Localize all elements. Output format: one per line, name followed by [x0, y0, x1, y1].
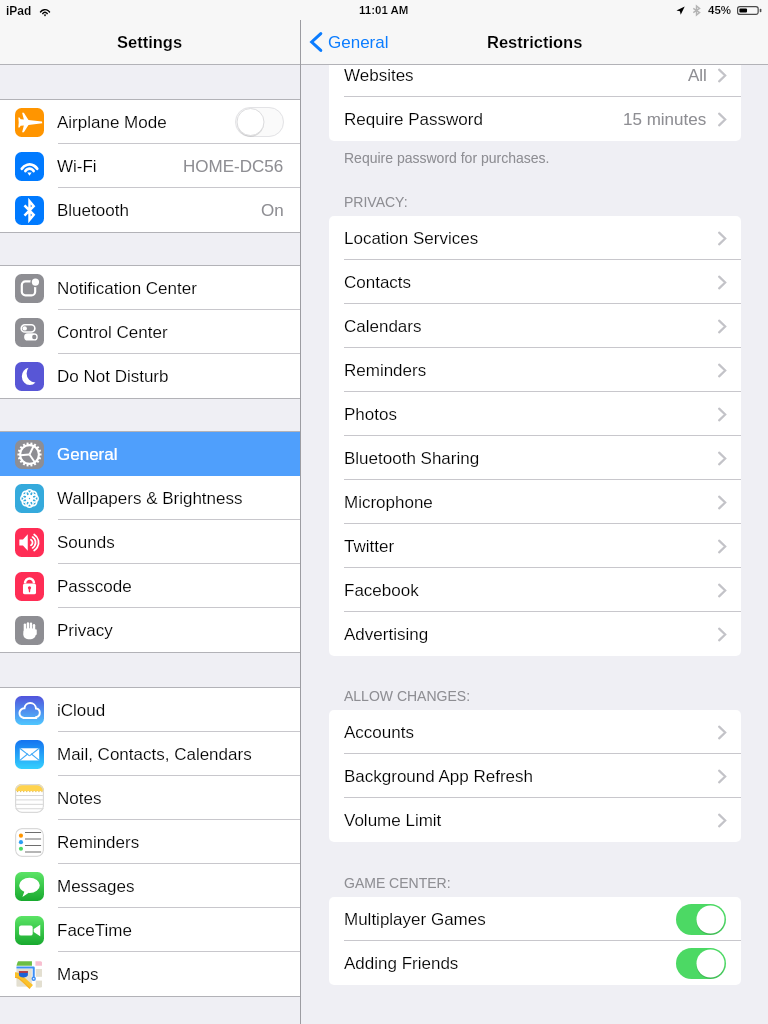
staticText: Wallpapers & Brightness [57, 489, 243, 508]
staticText: Bluetooth Sharing [344, 449, 480, 468]
button[interactable]: Photos [329, 392, 741, 436]
staticText: ALLOW CHANGES: [344, 688, 471, 704]
button[interactable]: Background App Refresh [329, 754, 741, 798]
button[interactable]: Airplane Mode [0, 100, 300, 144]
staticText: Advertising [344, 625, 429, 644]
button[interactable]: Facebook [329, 568, 741, 612]
button[interactable]: Accounts [329, 710, 741, 754]
staticText: PRIVACY: [344, 194, 408, 210]
staticText: General [57, 445, 118, 464]
staticText: Require password for purchases. [344, 150, 550, 166]
staticText: Settings [117, 33, 183, 51]
button[interactable]: Bluetooth [0, 188, 300, 232]
staticText: HOME-DC56 [183, 157, 284, 176]
button[interactable]: Volume Limit [329, 798, 741, 842]
button[interactable]: Reminders [0, 820, 300, 864]
staticText: Volume Limit [344, 811, 442, 830]
staticText: 11:01 AM [359, 4, 409, 17]
staticText: 45% [708, 4, 732, 17]
staticText: Notes [57, 789, 102, 808]
staticText: Websites [344, 66, 414, 85]
button[interactable]: Messages [0, 864, 300, 908]
staticText: iPad [6, 4, 32, 17]
button[interactable]: Twitter [329, 524, 741, 568]
button[interactable]: Wallpapers & Brightness [0, 476, 300, 520]
staticText: Airplane Mode [57, 113, 167, 132]
button[interactable]: Passcode [0, 564, 300, 608]
button[interactable]: Reminders [329, 348, 741, 392]
staticText: On [261, 201, 284, 220]
button[interactable]: Advertising [329, 612, 741, 656]
staticText: Facebook [344, 581, 419, 600]
button[interactable]: Mail, Contacts, Calendars [0, 732, 300, 776]
button[interactable]: General [0, 432, 300, 476]
staticText: Calendars [344, 317, 422, 336]
button[interactable]: Adding Friends [329, 941, 741, 985]
button[interactable]: Adding Friends on [676, 948, 726, 979]
staticText: Photos [344, 405, 397, 424]
button[interactable]: Airplane Mode off [235, 107, 284, 137]
staticText: Maps [57, 965, 99, 984]
staticText: Privacy [57, 621, 113, 640]
button[interactable]: Notification Center [0, 266, 300, 310]
staticText: Bluetooth [57, 201, 129, 220]
button[interactable]: Multiplayer Games on [676, 904, 726, 935]
staticText: Multiplayer Games [344, 910, 486, 929]
button[interactable]: Notes [0, 776, 300, 820]
staticText: Notification Center [57, 279, 197, 298]
staticText: Reminders [57, 833, 140, 852]
staticText: Do Not Disturb [57, 367, 169, 386]
staticText: GAME CENTER: [344, 875, 451, 891]
staticText: Sounds [57, 533, 115, 552]
staticText: iCloud [57, 701, 106, 720]
button[interactable]: Microphone [329, 480, 741, 524]
staticText: 15 minutes [623, 110, 707, 129]
button[interactable]: Contacts [329, 260, 741, 304]
staticText: Restrictions [487, 33, 583, 51]
staticText: Accounts [344, 723, 414, 742]
staticText: Background App Refresh [344, 767, 534, 786]
staticText: Wi-Fi [57, 157, 97, 176]
button[interactable]: Calendars [329, 304, 741, 348]
button[interactable]: Multiplayer Games [329, 897, 741, 941]
button[interactable]: Wi-Fi [0, 144, 300, 188]
button[interactable]: Require Password [329, 97, 741, 141]
staticText: FaceTime [57, 921, 132, 940]
button[interactable]: iCloud [0, 688, 300, 732]
staticText: Microphone [344, 493, 433, 512]
staticText: Twitter [344, 537, 395, 556]
staticText: All [688, 66, 707, 85]
staticText: Passcode [57, 577, 132, 596]
staticText: Mail, Contacts, Calendars [57, 745, 252, 764]
button[interactable]: Websites [329, 65, 741, 97]
button[interactable]: Maps [0, 952, 300, 996]
staticText: Contacts [344, 273, 412, 292]
button[interactable]: Sounds [0, 520, 300, 564]
button[interactable]: Do Not Disturb [0, 354, 300, 398]
staticText: Control Center [57, 323, 168, 342]
button[interactable]: Location Services [329, 216, 741, 260]
staticText: Adding Friends [344, 954, 459, 973]
button[interactable]: Bluetooth Sharing [329, 436, 741, 480]
staticText: Location Services [344, 229, 479, 248]
button[interactable]: FaceTime [0, 908, 300, 952]
staticText: Messages [57, 877, 135, 896]
button[interactable]: Control Center [0, 310, 300, 354]
staticText: Reminders [344, 361, 427, 380]
button[interactable]: Privacy [0, 608, 300, 652]
staticText: General [328, 33, 389, 52]
staticText: Require Password [344, 110, 483, 129]
button[interactable]: Back to General [301, 20, 399, 64]
